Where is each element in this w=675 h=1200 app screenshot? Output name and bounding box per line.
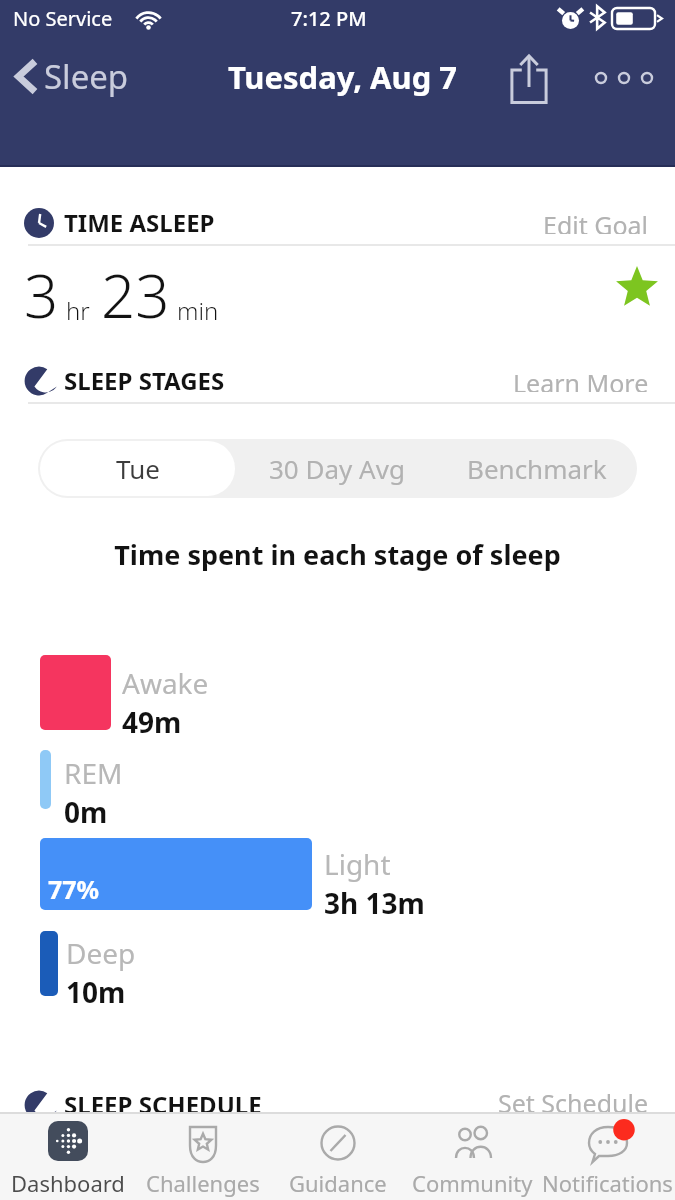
button[interactable]: Share xyxy=(497,42,561,114)
button[interactable]: Notifications xyxy=(540,1116,675,1200)
staticText: SLEEP SCHEDULE xyxy=(64,1088,262,1121)
staticText: Community xyxy=(412,1168,533,1198)
button[interactable]: 30 Day Avg xyxy=(239,441,435,496)
staticText: Guidance xyxy=(289,1168,387,1198)
staticText: 30 Day Avg xyxy=(269,451,405,486)
button[interactable]: Learn More xyxy=(505,360,657,398)
staticText: 0m xyxy=(64,793,108,831)
button[interactable]: Community xyxy=(405,1116,540,1200)
staticText: 3 xyxy=(24,254,59,336)
button[interactable]: Guidance xyxy=(270,1116,405,1200)
staticText: min xyxy=(177,294,219,327)
staticText: REM xyxy=(64,754,123,792)
button[interactable]: Sleep xyxy=(6,50,141,103)
staticText: Tuesday, Aug 7 xyxy=(228,56,458,98)
staticText: Challenges xyxy=(146,1168,260,1198)
staticText: Dashboard xyxy=(11,1168,125,1198)
staticText: Edit Goal xyxy=(543,208,649,234)
staticText: Sleep xyxy=(44,54,129,99)
staticText: hr xyxy=(66,294,90,327)
staticText: Notifications xyxy=(542,1168,673,1198)
button[interactable]: Edit Goal xyxy=(535,202,657,240)
button[interactable]: Challenges xyxy=(135,1116,270,1200)
staticText: Deep xyxy=(66,934,136,972)
staticText: No Service xyxy=(13,5,113,32)
staticText: 49m xyxy=(122,703,182,741)
staticText: 23 xyxy=(101,254,170,336)
button[interactable]: Dashboard xyxy=(0,1116,135,1200)
staticText: Time spent in each stage of sleep xyxy=(0,536,675,573)
staticText: Awake xyxy=(122,664,209,702)
staticText: 3h 13m xyxy=(324,884,425,922)
staticText: 77% xyxy=(48,872,100,906)
staticText: Tue xyxy=(116,451,160,486)
button[interactable]: Tue xyxy=(40,441,235,496)
staticText: 7:12 PM xyxy=(291,5,367,32)
staticText: 10m xyxy=(66,973,126,1011)
staticText: Learn More xyxy=(513,366,649,392)
staticText: SLEEP STAGES xyxy=(64,364,225,397)
button[interactable]: Benchmark xyxy=(439,441,635,496)
staticText: Light xyxy=(324,845,391,883)
staticText: Benchmark xyxy=(467,451,607,486)
button[interactable]: More options xyxy=(588,50,660,106)
staticText: TIME ASLEEP xyxy=(64,206,215,239)
staticText: Set Schedule xyxy=(498,1086,649,1120)
